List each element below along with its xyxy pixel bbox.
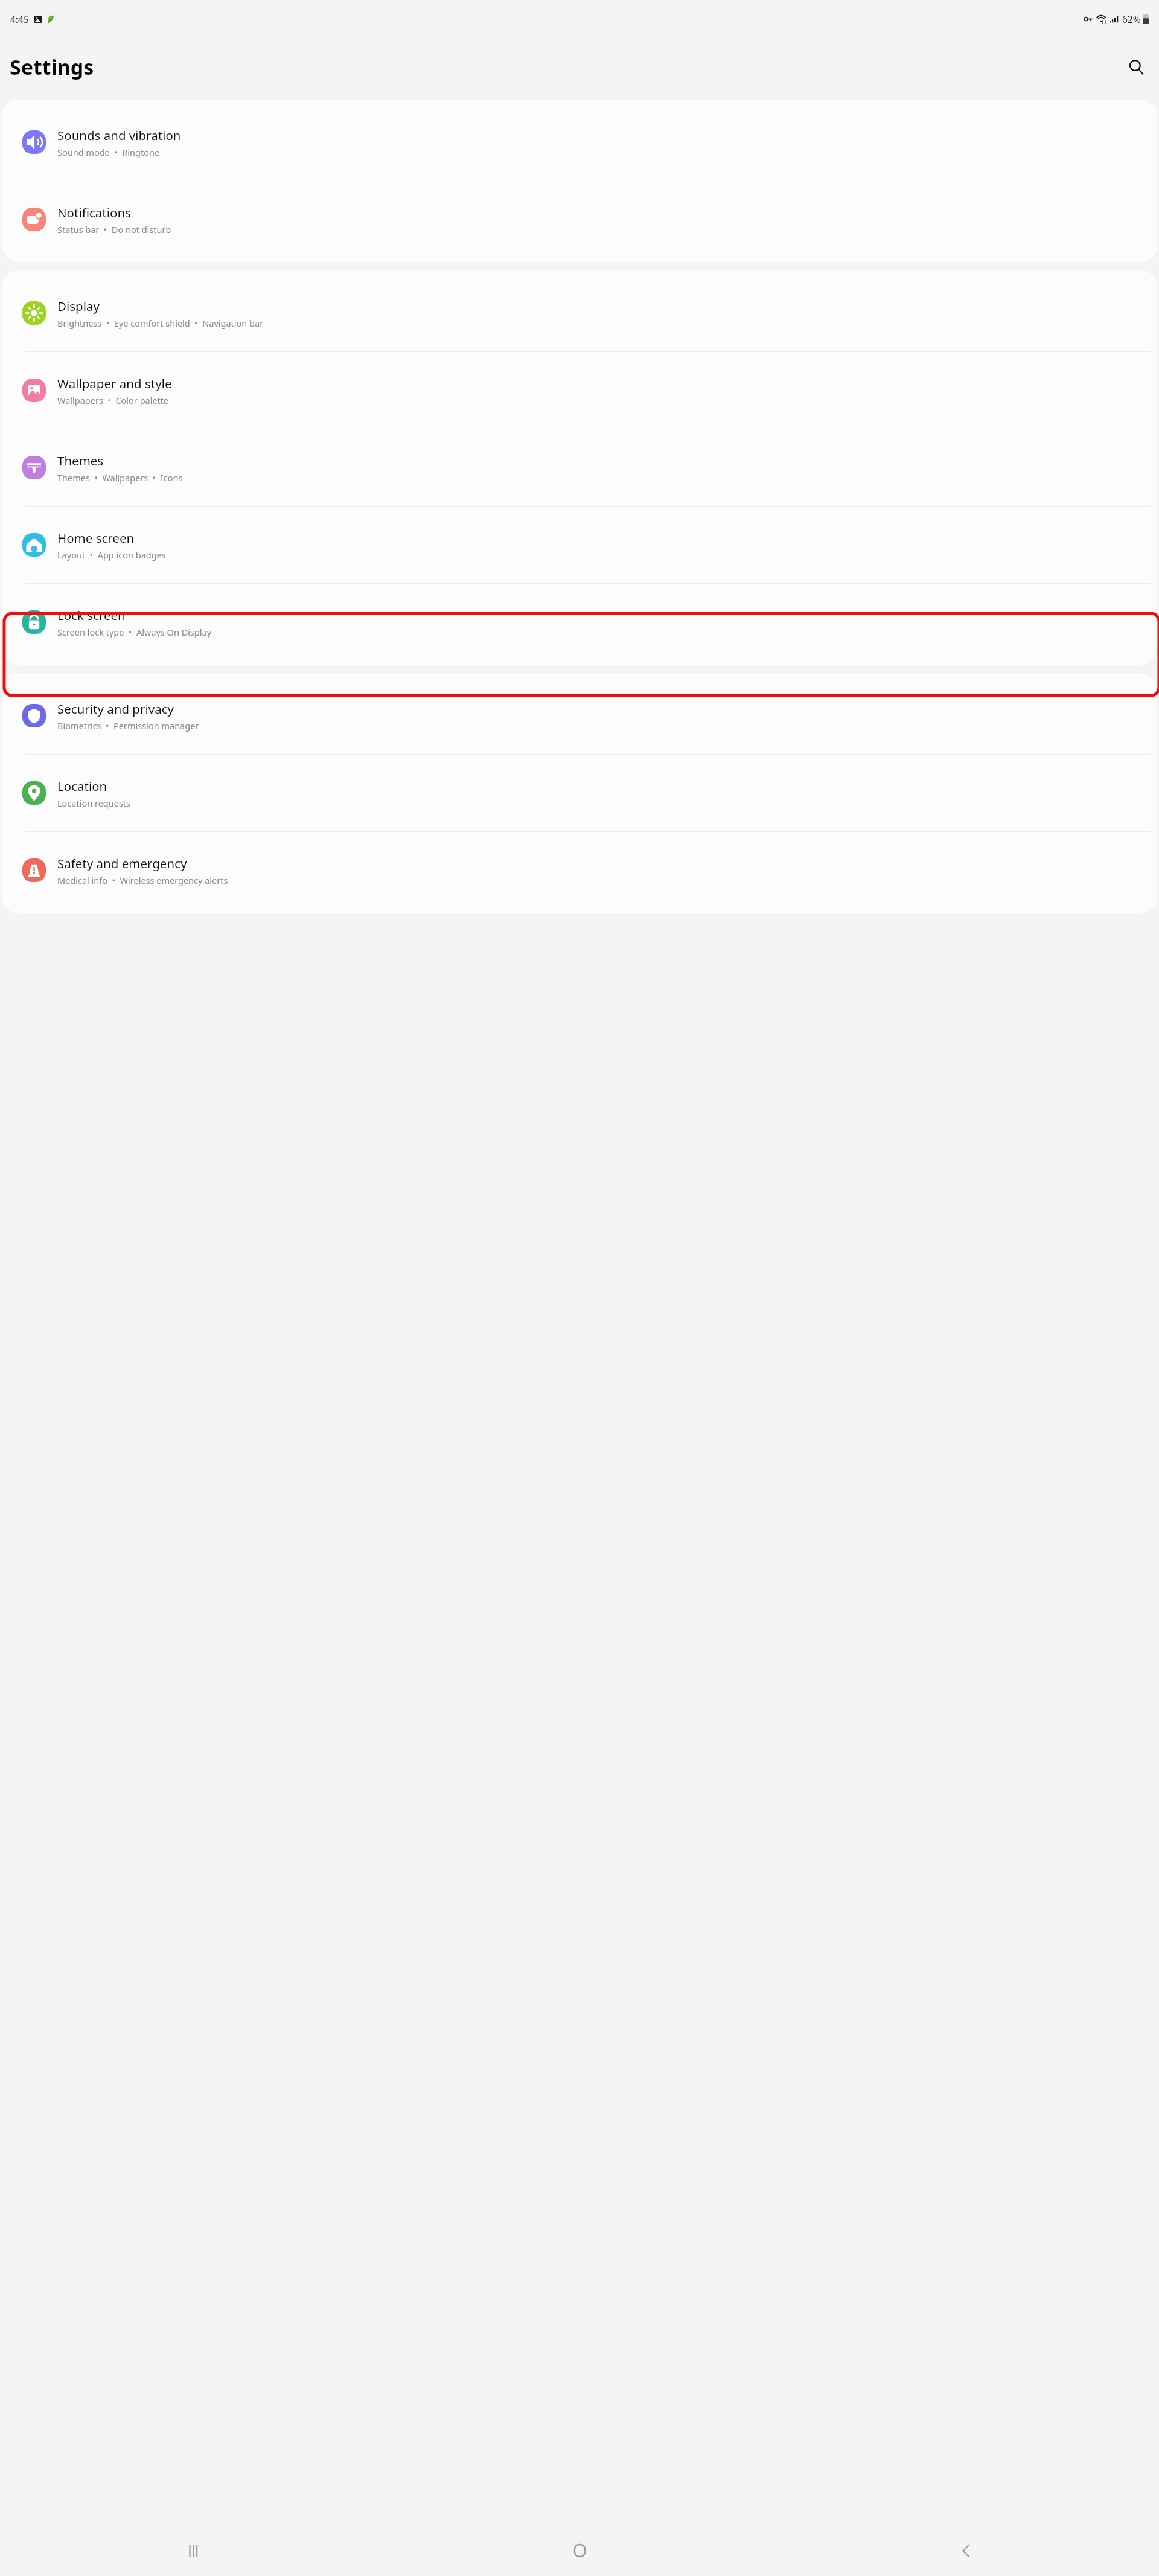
button[interactable]: Sounds and vibration <box>2 104 1157 181</box>
button[interactable]: Search <box>1122 53 1151 81</box>
staticText: Home screen <box>57 529 135 546</box>
staticText: Location <box>57 778 107 794</box>
staticText: Settings <box>10 53 94 81</box>
staticText: Wallpapers • Color palette <box>57 394 169 406</box>
button[interactable]: Home <box>386 2525 773 2576</box>
button[interactable]: Recent apps <box>0 2525 386 2576</box>
staticText: Screen lock type • Always On Display <box>57 626 212 638</box>
staticText: Themes • Wallpapers • Icons <box>57 471 183 484</box>
button[interactable]: Lock screen <box>2 584 1157 660</box>
staticText: Location requests <box>57 797 131 809</box>
staticText: Brightness • Eye comfort shield • Naviga… <box>57 317 264 329</box>
staticText: Sound mode • Ringtone <box>57 146 160 158</box>
staticText: Display <box>57 298 100 315</box>
staticText: Notifications <box>57 204 131 221</box>
staticText: 62% <box>1122 13 1141 25</box>
button[interactable]: Security and privacy <box>2 677 1157 754</box>
staticText: 4:45 <box>10 13 29 25</box>
staticText: Security and privacy <box>57 700 174 717</box>
staticText: Status bar • Do not disturb <box>57 223 171 235</box>
staticText: Wallpaper and style <box>57 375 172 392</box>
staticText: Biometrics • Permission manager <box>57 720 199 732</box>
staticText: Lock screen <box>57 607 126 624</box>
staticText: Themes <box>57 452 104 469</box>
button[interactable]: Themes <box>2 429 1157 506</box>
staticText: Safety and emergency <box>57 855 187 872</box>
button[interactable]: Home screen <box>2 507 1157 583</box>
button[interactable]: Location <box>2 755 1157 831</box>
staticText: Medical info • Wireless emergency alerts <box>57 874 228 886</box>
button[interactable]: Wallpaper and style <box>2 352 1157 429</box>
button[interactable]: Safety and emergency <box>2 832 1157 909</box>
staticText: Layout • App icon badges <box>57 549 166 561</box>
button[interactable]: Display <box>2 275 1157 351</box>
staticText: Sounds and vibration <box>57 127 181 144</box>
button[interactable]: Notifications <box>2 181 1157 258</box>
